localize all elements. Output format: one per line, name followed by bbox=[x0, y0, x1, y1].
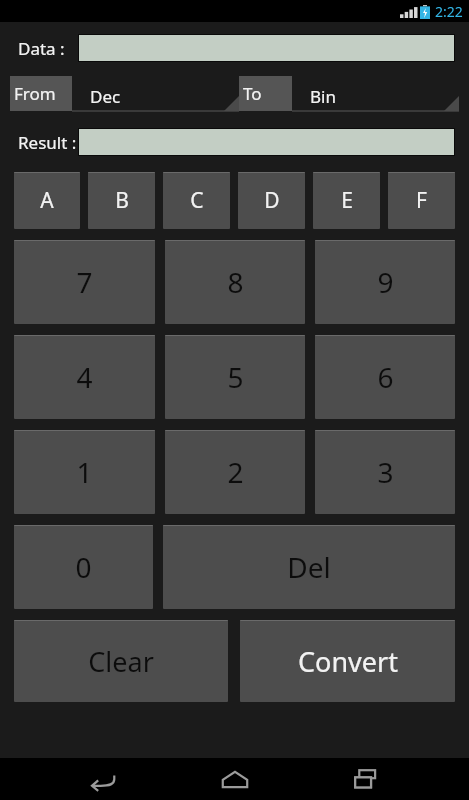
staticText: 1 bbox=[76, 453, 93, 491]
button[interactable]: Dec bbox=[72, 76, 239, 116]
button[interactable]: Back bbox=[75, 758, 131, 800]
staticText: From bbox=[14, 82, 56, 105]
button[interactable]: 2 bbox=[165, 430, 305, 514]
button[interactable]: Del bbox=[163, 525, 455, 609]
staticText: 9 bbox=[377, 263, 394, 301]
button[interactable]: To bbox=[239, 76, 292, 111]
staticText: C bbox=[190, 186, 204, 215]
button[interactable]: 1 bbox=[14, 430, 155, 514]
button[interactable]: 6 bbox=[315, 335, 455, 419]
button[interactable]: 8 bbox=[165, 240, 305, 324]
staticText: Result : bbox=[18, 131, 77, 154]
staticText: Convert bbox=[298, 643, 398, 680]
staticText: To bbox=[243, 82, 262, 105]
staticText: E bbox=[341, 186, 353, 215]
staticText: 7 bbox=[76, 263, 93, 301]
button[interactable]: Recent apps bbox=[338, 758, 394, 800]
staticText: 8 bbox=[227, 263, 244, 301]
staticText: 2:22 bbox=[435, 2, 463, 21]
button[interactable]: 3 bbox=[315, 430, 455, 514]
button[interactable]: B bbox=[88, 172, 155, 229]
button[interactable]: Home bbox=[207, 758, 263, 800]
staticText: Del bbox=[287, 548, 331, 586]
button[interactable]: 9 bbox=[315, 240, 455, 324]
staticText: 0 bbox=[75, 548, 92, 586]
staticText: 6 bbox=[377, 358, 394, 396]
button[interactable]: Clear bbox=[14, 620, 228, 702]
staticText: Bin bbox=[310, 85, 336, 108]
staticText: D bbox=[264, 186, 280, 215]
button[interactable]: A bbox=[14, 172, 80, 229]
button[interactable]: Bin bbox=[292, 76, 459, 116]
staticText: A bbox=[40, 186, 54, 215]
staticText: F bbox=[416, 186, 427, 215]
button[interactable]: C bbox=[163, 172, 230, 229]
staticText: 5 bbox=[227, 358, 244, 396]
staticText: Clear bbox=[88, 643, 154, 680]
staticText: 4 bbox=[76, 358, 93, 396]
button[interactable]: D bbox=[238, 172, 305, 229]
button[interactable]: 5 bbox=[165, 335, 305, 419]
button[interactable]: 4 bbox=[14, 335, 155, 419]
button[interactable]: E bbox=[313, 172, 380, 229]
button[interactable]: Convert bbox=[240, 620, 455, 702]
staticText: 3 bbox=[377, 453, 394, 491]
button[interactable]: From bbox=[10, 76, 72, 111]
staticText: B bbox=[115, 186, 129, 215]
staticText: Data : bbox=[18, 37, 65, 60]
staticText: 2 bbox=[227, 453, 244, 491]
button[interactable]: 0 bbox=[14, 525, 153, 609]
button[interactable]: F bbox=[388, 172, 455, 229]
button[interactable]: 7 bbox=[14, 240, 155, 324]
staticText: Dec bbox=[90, 85, 121, 108]
